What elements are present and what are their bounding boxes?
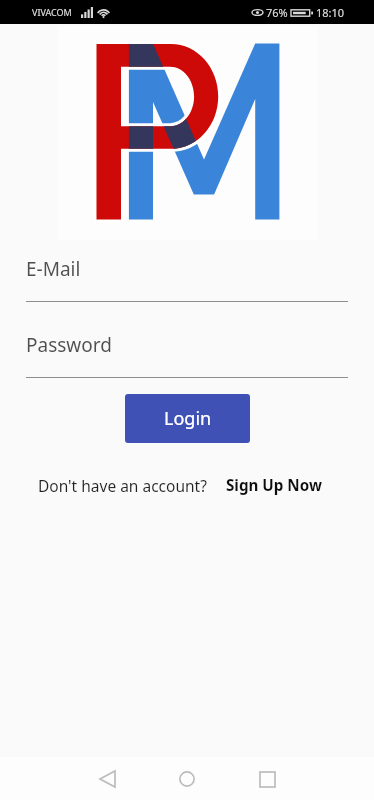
- staticText: VIVACOM: [32, 6, 72, 18]
- button[interactable]: Login: [125, 394, 250, 443]
- button[interactable]: Sign Up Now: [226, 475, 322, 496]
- button[interactable]: Back: [90, 762, 124, 796]
- staticText: E-Mail: [26, 256, 81, 282]
- button[interactable]: Password: [26, 332, 348, 378]
- staticText: 76%: [266, 5, 288, 20]
- staticText: Sign Up Now: [226, 475, 322, 496]
- staticText: Password: [26, 332, 112, 358]
- button[interactable]: Recents: [250, 762, 284, 796]
- staticText: Don't have an account?: [38, 475, 207, 496]
- button[interactable]: Home: [170, 762, 204, 796]
- button[interactable]: E-Mail: [26, 256, 348, 302]
- staticText: 18:10: [316, 5, 345, 20]
- staticText: Login: [164, 406, 212, 431]
